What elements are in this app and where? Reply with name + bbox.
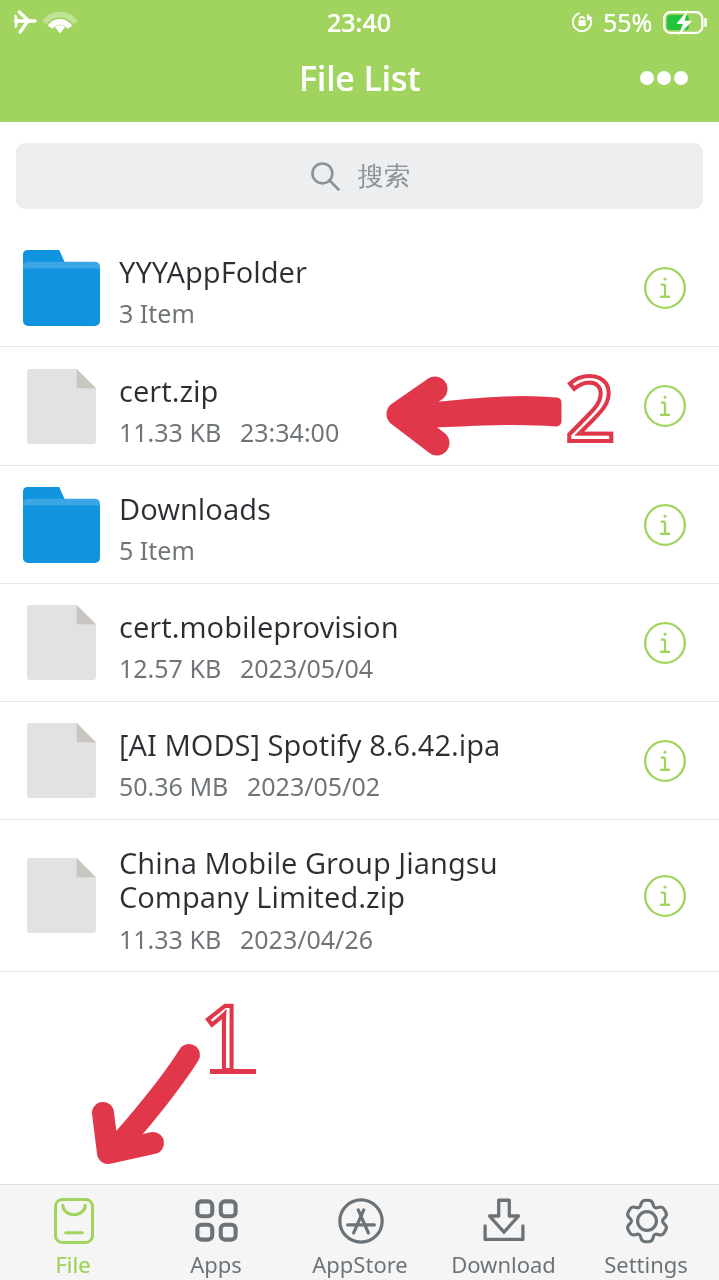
button[interactable]: 搜索 — [16, 143, 703, 209]
button[interactable]: [AI MODS] Spotify 8.6.42.ipa — [0, 702, 719, 819]
staticText: Apps — [190, 1249, 242, 1279]
button[interactable]: Info — [629, 607, 701, 679]
button[interactable]: Info — [629, 860, 701, 932]
staticText: 23:34:00 — [240, 415, 340, 449]
staticText: 55% — [603, 5, 653, 39]
button[interactable]: YYYAppFolder — [0, 229, 719, 346]
staticText: cert.mobileprovision — [119, 607, 399, 646]
staticText: Downloads — [119, 489, 271, 528]
staticText: 2023/04/26 — [240, 922, 374, 956]
staticText: YYYAppFolder — [119, 252, 307, 291]
staticText: File — [55, 1249, 91, 1279]
button[interactable]: More options — [636, 56, 692, 100]
button[interactable]: Info — [629, 370, 701, 442]
staticText: Settings — [604, 1249, 688, 1279]
staticText: 23:40 — [327, 5, 392, 39]
button[interactable]: AppStore — [290, 1184, 430, 1280]
button[interactable]: Settings — [576, 1184, 716, 1280]
staticText: 搜索 — [358, 160, 410, 193]
staticText: 2023/05/02 — [247, 769, 381, 803]
staticText: AppStore — [312, 1249, 408, 1279]
button[interactable]: File — [3, 1184, 143, 1280]
staticText: 2023/05/04 — [240, 651, 374, 685]
button[interactable]: Apps — [146, 1184, 286, 1280]
staticText: 11.33 KB — [119, 415, 222, 449]
button[interactable]: Info — [629, 252, 701, 324]
button[interactable]: Downloads — [0, 466, 719, 583]
staticText: 11.33 KB — [119, 922, 222, 956]
staticText: 1 — [200, 975, 251, 1096]
staticText: File List — [299, 55, 421, 101]
staticText: China Mobile Group Jiangsu Company Limit… — [119, 843, 498, 916]
button[interactable]: China Mobile Group Jiangsu Company Limit… — [0, 820, 719, 971]
staticText: Download — [451, 1249, 556, 1279]
button[interactable]: cert.mobileprovision — [0, 584, 719, 701]
staticText: 2 — [565, 346, 616, 467]
staticText: 12.57 KB — [119, 651, 222, 685]
staticText: [AI MODS] Spotify 8.6.42.ipa — [119, 725, 501, 764]
staticText: 5 Item — [119, 533, 195, 567]
button[interactable]: Download — [433, 1184, 573, 1280]
staticText: 3 Item — [119, 296, 195, 330]
staticText: cert.zip — [119, 371, 219, 410]
button[interactable]: Info — [629, 725, 701, 797]
button[interactable]: Info — [629, 489, 701, 561]
staticText: 50.36 MB — [119, 769, 229, 803]
button[interactable]: cert.zip — [0, 347, 719, 465]
